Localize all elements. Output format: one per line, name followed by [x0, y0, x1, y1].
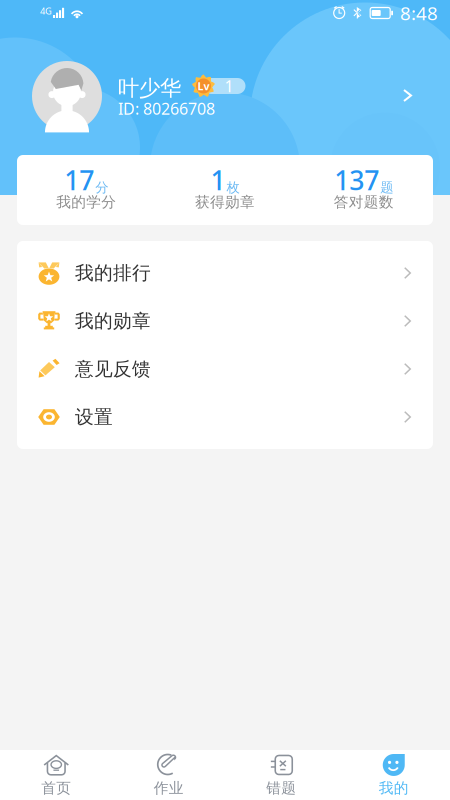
- staticText: 17: [64, 162, 94, 198]
- staticText: 枚: [226, 179, 239, 196]
- staticText: 4G: [40, 5, 52, 17]
- button[interactable]: 意见反馈: [17, 345, 433, 393]
- staticText: 错题: [266, 779, 296, 797]
- button[interactable]: 叶少华: [0, 0, 450, 195]
- staticText: 我的排行: [75, 261, 151, 284]
- staticText: 答对题数: [334, 193, 394, 211]
- button[interactable]: 错题: [225, 750, 337, 800]
- staticText: 意见反馈: [75, 357, 151, 380]
- button[interactable]: 我的勋章: [17, 297, 433, 345]
- staticText: 1: [224, 75, 233, 97]
- button[interactable]: 首页: [0, 750, 112, 800]
- staticText: 分: [95, 179, 108, 196]
- staticText: 首页: [41, 779, 71, 797]
- staticText: 叶少华: [118, 75, 181, 101]
- button[interactable]: 我的: [337, 750, 450, 800]
- staticText: 我的: [379, 779, 409, 797]
- staticText: 设置: [75, 405, 113, 428]
- staticText: 我的勋章: [75, 309, 151, 332]
- staticText: 获得勋章: [195, 193, 255, 211]
- button[interactable]: 设置: [17, 393, 433, 441]
- staticText: 1: [210, 162, 225, 198]
- staticText: 题: [380, 179, 393, 196]
- button[interactable]: 作业: [112, 750, 225, 800]
- staticText: 8:48: [400, 1, 438, 25]
- staticText: ID: 80266708: [118, 98, 215, 119]
- staticText: 我的学分: [56, 193, 116, 211]
- staticText: Lv: [197, 79, 209, 93]
- staticText: 137: [334, 162, 379, 198]
- staticText: 作业: [154, 779, 184, 797]
- button[interactable]: 我的排行: [17, 249, 433, 297]
